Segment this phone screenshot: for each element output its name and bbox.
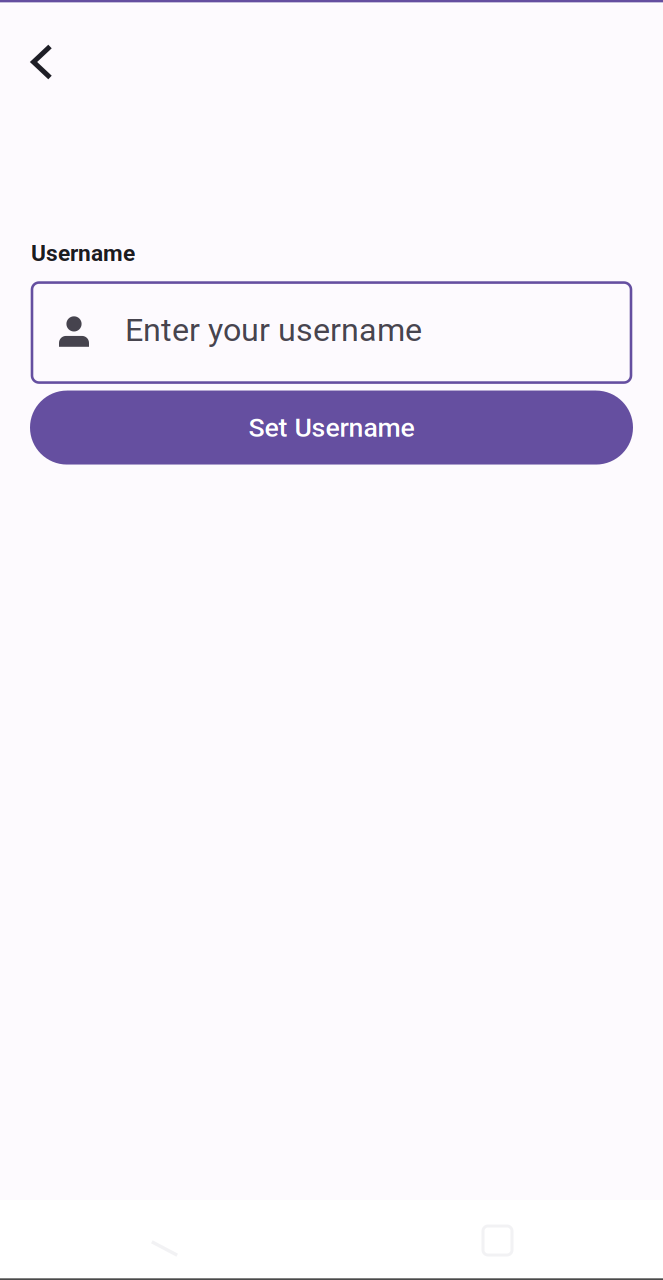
button[interactable]: Recent apps <box>463 1200 533 1260</box>
button[interactable]: Set Username <box>30 391 633 465</box>
staticText: Set Username <box>248 412 414 443</box>
button[interactable]: Back <box>11 36 71 96</box>
staticText: Username <box>31 240 135 267</box>
staticText: Enter your username <box>125 311 422 349</box>
